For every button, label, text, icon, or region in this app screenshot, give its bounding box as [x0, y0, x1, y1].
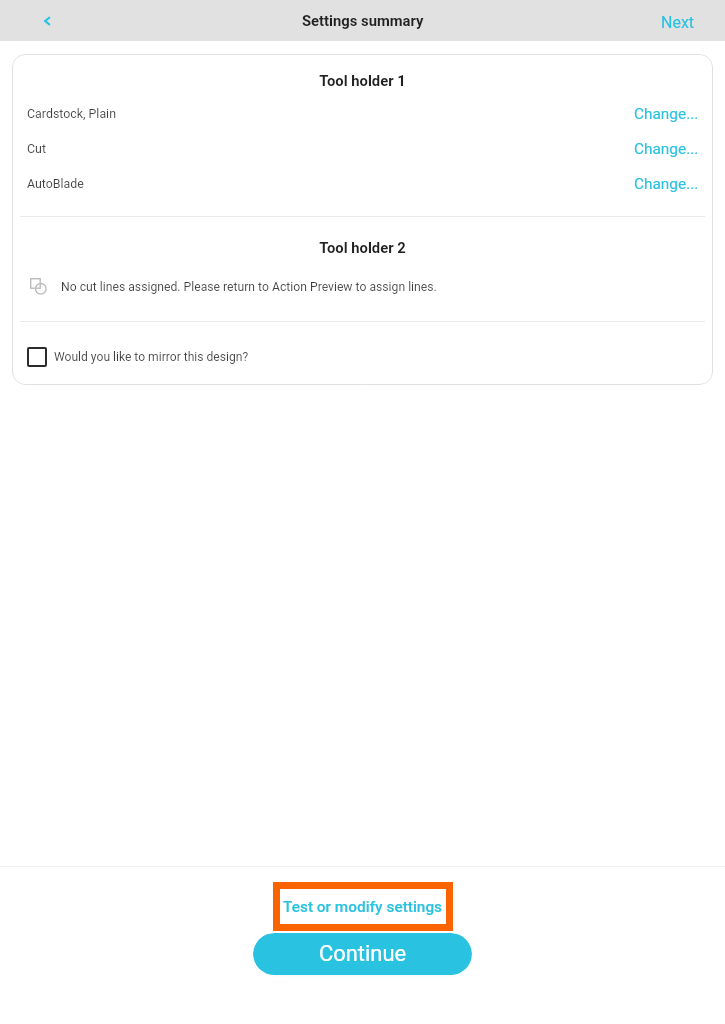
staticText: Change... — [634, 105, 699, 123]
staticText: Test or modify settings — [283, 898, 443, 916]
button[interactable]: Change... — [618, 135, 713, 163]
button[interactable]: Change... — [618, 170, 713, 198]
staticText: Cardstock, Plain — [27, 106, 116, 121]
staticText: Settings summary — [302, 12, 424, 29]
button[interactable]: Continue — [253, 933, 472, 975]
staticText: No cut lines assigned. Please return to … — [61, 280, 437, 294]
button[interactable]: Would you like to mirror this design? — [15, 343, 257, 371]
staticText: Change... — [634, 140, 699, 158]
button[interactable]: Test or modify settings — [273, 882, 453, 931]
staticText: Tool holder 1 — [12, 72, 713, 89]
staticText: Change... — [634, 175, 699, 193]
staticText: Cut — [27, 141, 46, 156]
staticText: Next — [661, 13, 695, 32]
button[interactable]: Next — [643, 5, 725, 36]
button[interactable]: Change... — [618, 100, 713, 128]
staticText: Tool holder 2 — [12, 239, 713, 256]
staticText: AutoBlade — [27, 176, 84, 191]
staticText: Continue — [319, 941, 407, 967]
button[interactable]: Back — [31, 6, 61, 36]
staticText: Would you like to mirror this design? — [54, 350, 249, 364]
